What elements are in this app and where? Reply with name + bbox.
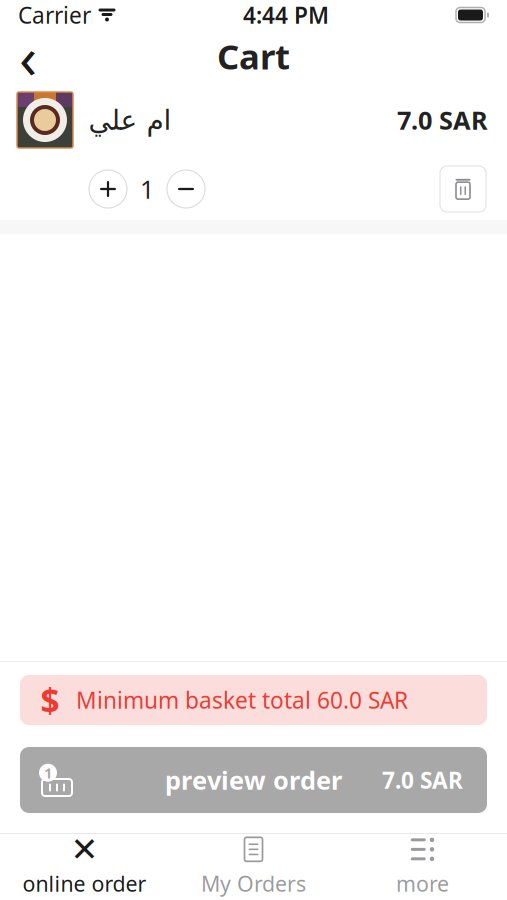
staticText: 1	[44, 763, 52, 782]
button[interactable]: Remove item	[440, 166, 486, 212]
staticText: 7.0 SAR	[397, 103, 488, 137]
staticText: ‹	[19, 17, 37, 95]
staticText: 7.0 SAR	[382, 765, 463, 795]
staticText: 1	[140, 172, 154, 206]
staticText: ام علي	[88, 104, 171, 136]
staticText: preview order	[165, 763, 342, 797]
button[interactable]: Decrease quantity	[167, 170, 205, 208]
staticText: ✕	[70, 830, 98, 868]
button[interactable]: preview order	[20, 747, 487, 813]
staticText: Minimum basket total 60.0 SAR	[76, 685, 408, 715]
button[interactable]: more	[338, 834, 507, 900]
staticText: $	[40, 678, 59, 722]
button[interactable]: My Orders	[169, 834, 338, 900]
staticText: online order	[22, 869, 146, 898]
button[interactable]: ✕	[0, 834, 169, 900]
staticText: 4:44 PM	[243, 0, 329, 30]
staticText: more	[396, 869, 449, 898]
button[interactable]: Increase quantity	[89, 170, 127, 208]
button[interactable]: Back	[4, 32, 52, 80]
staticText: My Orders	[201, 869, 306, 898]
staticText: Cart	[217, 33, 290, 79]
staticText: Carrier	[18, 0, 91, 30]
